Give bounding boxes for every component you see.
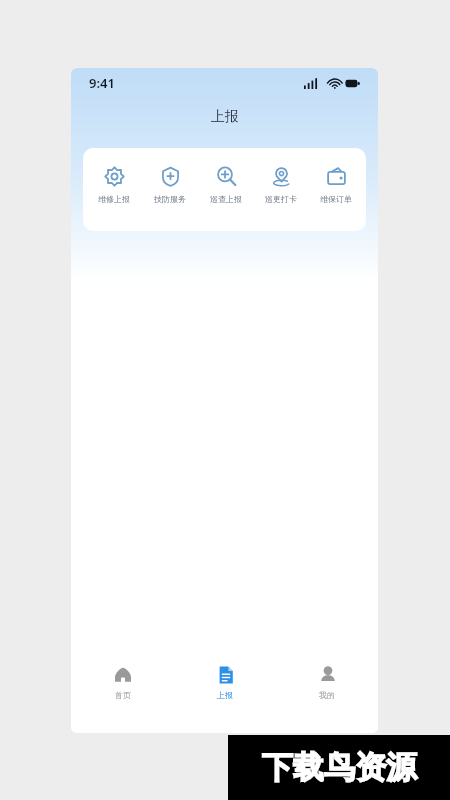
button[interactable]: 维保订单 <box>308 148 363 231</box>
staticText: 上报 <box>217 690 233 700</box>
staticText: 巡查上报 <box>210 194 242 204</box>
other: 技防服务 <box>160 166 181 187</box>
staticText: 维修上报 <box>98 194 130 204</box>
button[interactable]: 上报 <box>174 655 276 709</box>
staticText: 下载鸟资源 <box>262 748 417 787</box>
button[interactable]: 我的 <box>276 655 378 709</box>
staticText: 技防服务 <box>154 194 186 204</box>
other: 巡查上报 <box>216 166 237 187</box>
staticText: 首页 <box>115 690 131 700</box>
staticText: 巡更打卡 <box>265 194 297 204</box>
other: 维修上报 <box>104 166 125 187</box>
staticText: 上报 <box>211 108 239 126</box>
other: 维保订单 <box>326 166 347 187</box>
button[interactable]: 巡更打卡 <box>253 148 308 231</box>
button[interactable]: 首页 <box>71 655 174 709</box>
staticText: 9:41 <box>89 74 115 92</box>
other: 巡更打卡 <box>271 166 292 187</box>
staticText: 维保订单 <box>320 194 352 204</box>
button[interactable]: 技防服务 <box>142 148 198 231</box>
button[interactable]: 维修上报 <box>86 148 142 231</box>
staticText: 我的 <box>319 690 335 700</box>
button[interactable]: 巡查上报 <box>198 148 253 231</box>
